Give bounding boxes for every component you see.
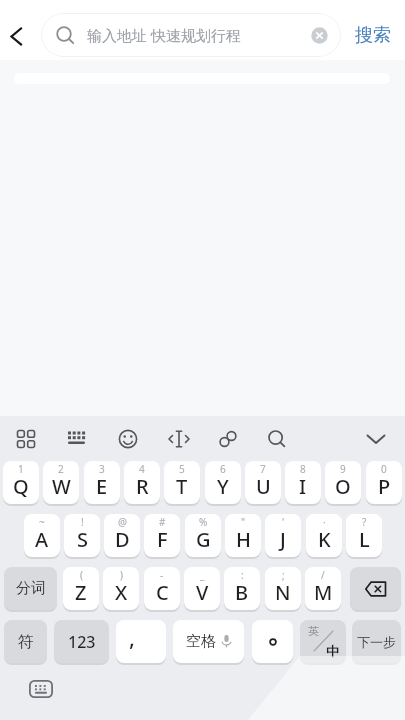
button[interactable]: 下一步 xyxy=(352,620,401,663)
staticText: Q xyxy=(13,473,29,500)
button[interactable]: 输入地址 快速规划行程 xyxy=(41,13,341,57)
staticText: ! xyxy=(81,515,84,529)
button[interactable]: 搜索 xyxy=(345,13,401,57)
staticText: J xyxy=(280,526,286,553)
button[interactable]: ~ xyxy=(24,514,60,557)
staticText: 1 xyxy=(18,462,24,476)
button[interactable]: ? xyxy=(346,514,382,557)
button[interactable]: 4 xyxy=(124,461,160,504)
staticText: A xyxy=(35,526,49,553)
button[interactable] xyxy=(252,620,293,663)
button[interactable]: 5 xyxy=(164,461,200,504)
staticText: W xyxy=(52,473,71,500)
button[interactable] xyxy=(350,567,401,610)
staticText: 符 xyxy=(18,632,34,652)
button[interactable] xyxy=(9,422,43,456)
staticText: : xyxy=(241,568,244,582)
button[interactable]: % xyxy=(185,514,221,557)
button[interactable]: _ xyxy=(184,567,220,610)
button[interactable]: 9 xyxy=(325,461,361,504)
button[interactable]: 123 xyxy=(54,620,109,663)
button[interactable]: ( xyxy=(63,567,99,610)
staticText: L xyxy=(359,526,370,553)
staticText: 4 xyxy=(139,462,145,476)
button[interactable] xyxy=(59,422,93,456)
staticText: M xyxy=(314,579,333,606)
staticText: B xyxy=(235,579,249,606)
staticText: , xyxy=(129,622,136,652)
staticText: C xyxy=(156,579,169,606)
button[interactable]: 2 xyxy=(43,461,79,504)
staticText: Z xyxy=(75,579,87,606)
staticText: 2 xyxy=(58,462,64,476)
button[interactable]: 空格 xyxy=(173,620,244,663)
button[interactable]: / xyxy=(305,567,341,610)
staticText: ? xyxy=(362,515,367,529)
staticText: S xyxy=(77,526,88,553)
staticText: % xyxy=(199,515,208,529)
staticText: ~ xyxy=(39,515,45,529)
staticText: - xyxy=(160,568,164,582)
staticText: H xyxy=(236,526,251,553)
button[interactable] xyxy=(20,671,62,707)
button[interactable] xyxy=(111,422,145,456)
staticText: 分词 xyxy=(16,579,46,598)
button[interactable]: 0 xyxy=(366,461,402,504)
button[interactable]: ) xyxy=(103,567,139,610)
staticText: K xyxy=(318,526,331,553)
staticText: " xyxy=(241,515,246,529)
button[interactable] xyxy=(359,422,393,456)
staticText: 3 xyxy=(99,462,105,476)
button[interactable]: ' xyxy=(265,514,301,557)
staticText: U xyxy=(256,473,271,500)
staticText: 搜索 xyxy=(355,24,391,47)
button[interactable]: : xyxy=(224,567,260,610)
staticText: E xyxy=(96,473,108,500)
staticText: @ xyxy=(118,515,127,529)
staticText: ' xyxy=(282,515,285,529)
button[interactable] xyxy=(260,422,294,456)
staticText: T xyxy=(176,473,188,500)
staticText: 5 xyxy=(179,462,185,476)
button[interactable]: 8 xyxy=(285,461,321,504)
staticText: 7 xyxy=(260,462,266,476)
button[interactable]: , xyxy=(116,620,166,663)
staticText: O xyxy=(335,473,351,500)
staticText: 6 xyxy=(220,462,226,476)
staticText: I xyxy=(299,473,307,500)
button[interactable]: · xyxy=(306,514,342,557)
button[interactable]: @ xyxy=(104,514,140,557)
button[interactable]: 分词 xyxy=(4,567,57,610)
button[interactable]: ! xyxy=(64,514,100,557)
staticText: R xyxy=(136,473,149,500)
staticText: N xyxy=(275,579,291,606)
staticText: 下一步 xyxy=(357,634,396,650)
button[interactable]: 6 xyxy=(205,461,241,504)
staticText: 英 xyxy=(308,624,319,638)
staticText: P xyxy=(378,473,391,500)
button[interactable]: 英 xyxy=(300,620,346,663)
staticText: Y xyxy=(217,473,229,500)
button[interactable]: ; xyxy=(265,567,301,610)
button[interactable]: " xyxy=(225,514,261,557)
button[interactable] xyxy=(4,21,32,49)
staticText: # xyxy=(159,515,166,529)
staticText: X xyxy=(115,579,128,606)
staticText: F xyxy=(157,526,168,553)
staticText: 输入地址 快速规划行程 xyxy=(87,25,241,45)
button[interactable]: 符 xyxy=(4,620,47,663)
staticText: 9 xyxy=(340,462,346,476)
staticText: 中 xyxy=(326,643,339,659)
staticText: 0 xyxy=(381,462,387,476)
button[interactable]: 3 xyxy=(84,461,120,504)
button[interactable] xyxy=(211,422,245,456)
button[interactable] xyxy=(162,422,196,456)
button[interactable]: 1 xyxy=(3,461,39,504)
button[interactable]: # xyxy=(144,514,180,557)
staticText: 8 xyxy=(300,462,306,476)
staticText: _ xyxy=(200,568,205,582)
staticText: 123 xyxy=(68,631,96,653)
staticText: D xyxy=(115,526,130,553)
button[interactable]: - xyxy=(144,567,180,610)
button[interactable]: 7 xyxy=(245,461,281,504)
